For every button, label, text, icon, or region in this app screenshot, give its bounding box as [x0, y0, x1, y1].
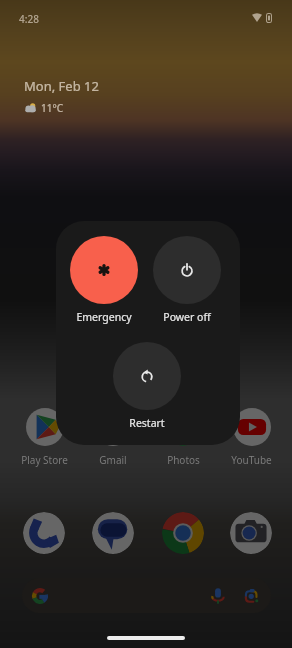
- button[interactable]: Play Store: [14, 408, 74, 468]
- button[interactable]: Phone: [23, 512, 65, 554]
- button[interactable]: Messages: [92, 512, 134, 554]
- button[interactable]: Restart: [111, 342, 183, 430]
- button[interactable]: Gmail: [83, 408, 143, 468]
- button[interactable]: Chrome: [162, 512, 204, 554]
- staticText: Photos: [167, 453, 200, 467]
- staticText: Play Store: [21, 453, 68, 467]
- button[interactable]: Power off: [151, 236, 223, 324]
- staticText: Gmail: [99, 453, 127, 467]
- button[interactable]: Camera: [230, 512, 272, 554]
- button[interactable]: Search: [22, 578, 271, 613]
- staticText: 4:28: [19, 12, 39, 26]
- staticText: Power off: [163, 310, 211, 324]
- staticText: Emergency: [76, 310, 132, 324]
- button[interactable]: YouTube: [221, 408, 281, 468]
- button[interactable]: Photos: [153, 408, 213, 468]
- staticText: YouTube: [231, 453, 272, 467]
- button[interactable]: Emergency: [68, 236, 140, 324]
- button[interactable]: Mon, Feb 12: [24, 77, 99, 115]
- staticText: Restart: [129, 416, 165, 430]
- staticText: Mon, Feb 12: [24, 77, 99, 95]
- staticText: 11°C: [41, 101, 64, 115]
